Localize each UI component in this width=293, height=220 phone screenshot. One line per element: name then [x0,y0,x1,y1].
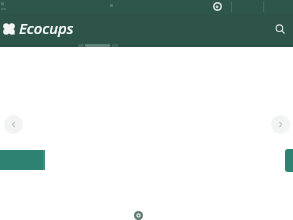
button[interactable] [285,149,293,172]
button[interactable]: Previous [4,115,23,134]
button[interactable]: WhatsApp [213,2,222,11]
button[interactable]: Search [273,22,287,36]
button[interactable]: Ecocups [3,18,74,39]
button[interactable]: Scroll indicator [134,211,143,220]
staticText: Ecocups [19,18,74,38]
button[interactable]: Next [271,115,290,134]
